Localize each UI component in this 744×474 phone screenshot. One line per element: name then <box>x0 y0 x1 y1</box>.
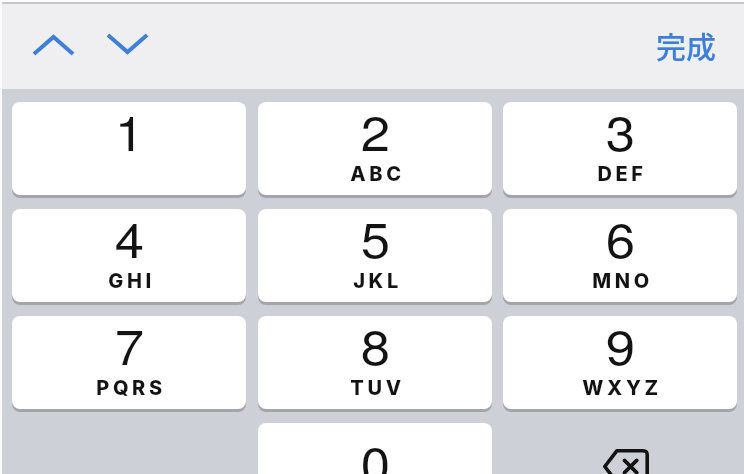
staticText: 2 <box>361 102 390 165</box>
staticText: 7 <box>115 316 144 379</box>
button[interactable]: 6 MNO <box>503 209 737 302</box>
staticText: 6 <box>606 209 635 272</box>
button[interactable]: 5 JKL <box>258 209 492 302</box>
staticText: TUV <box>350 376 405 400</box>
button[interactable]: Previous field <box>25 20 81 70</box>
staticText: 3 <box>606 102 635 165</box>
staticText: 0 <box>361 427 390 474</box>
staticText: 4 <box>115 209 144 272</box>
staticText: 9 <box>606 316 635 379</box>
button[interactable]: 4 GHI <box>12 209 246 302</box>
button[interactable]: 9 WXYZ <box>503 316 737 409</box>
staticText: 5 <box>361 209 390 272</box>
staticText: JKL <box>353 269 402 293</box>
staticText: WXYZ <box>582 376 662 400</box>
staticText: ABC <box>350 162 405 186</box>
button[interactable]: 7 PQRS <box>12 316 246 409</box>
staticText: GHI <box>108 269 155 293</box>
button[interactable]: 完成 <box>656 23 716 66</box>
button[interactable]: 8 TUV <box>258 316 492 409</box>
staticText: 完成 <box>656 23 716 66</box>
button[interactable]: 0 <box>258 423 492 474</box>
button[interactable]: 2 ABC <box>258 102 492 195</box>
staticText: MNO <box>592 269 653 293</box>
staticText: 1 <box>115 102 144 165</box>
button[interactable]: 1 <box>12 102 246 195</box>
button[interactable]: 3 DEF <box>503 102 737 195</box>
staticText: PQRS <box>96 376 166 400</box>
staticText: DEF <box>597 162 647 186</box>
button[interactable]: Backspace <box>509 420 743 474</box>
staticText: 8 <box>361 316 390 379</box>
button[interactable]: Next field <box>99 18 155 68</box>
